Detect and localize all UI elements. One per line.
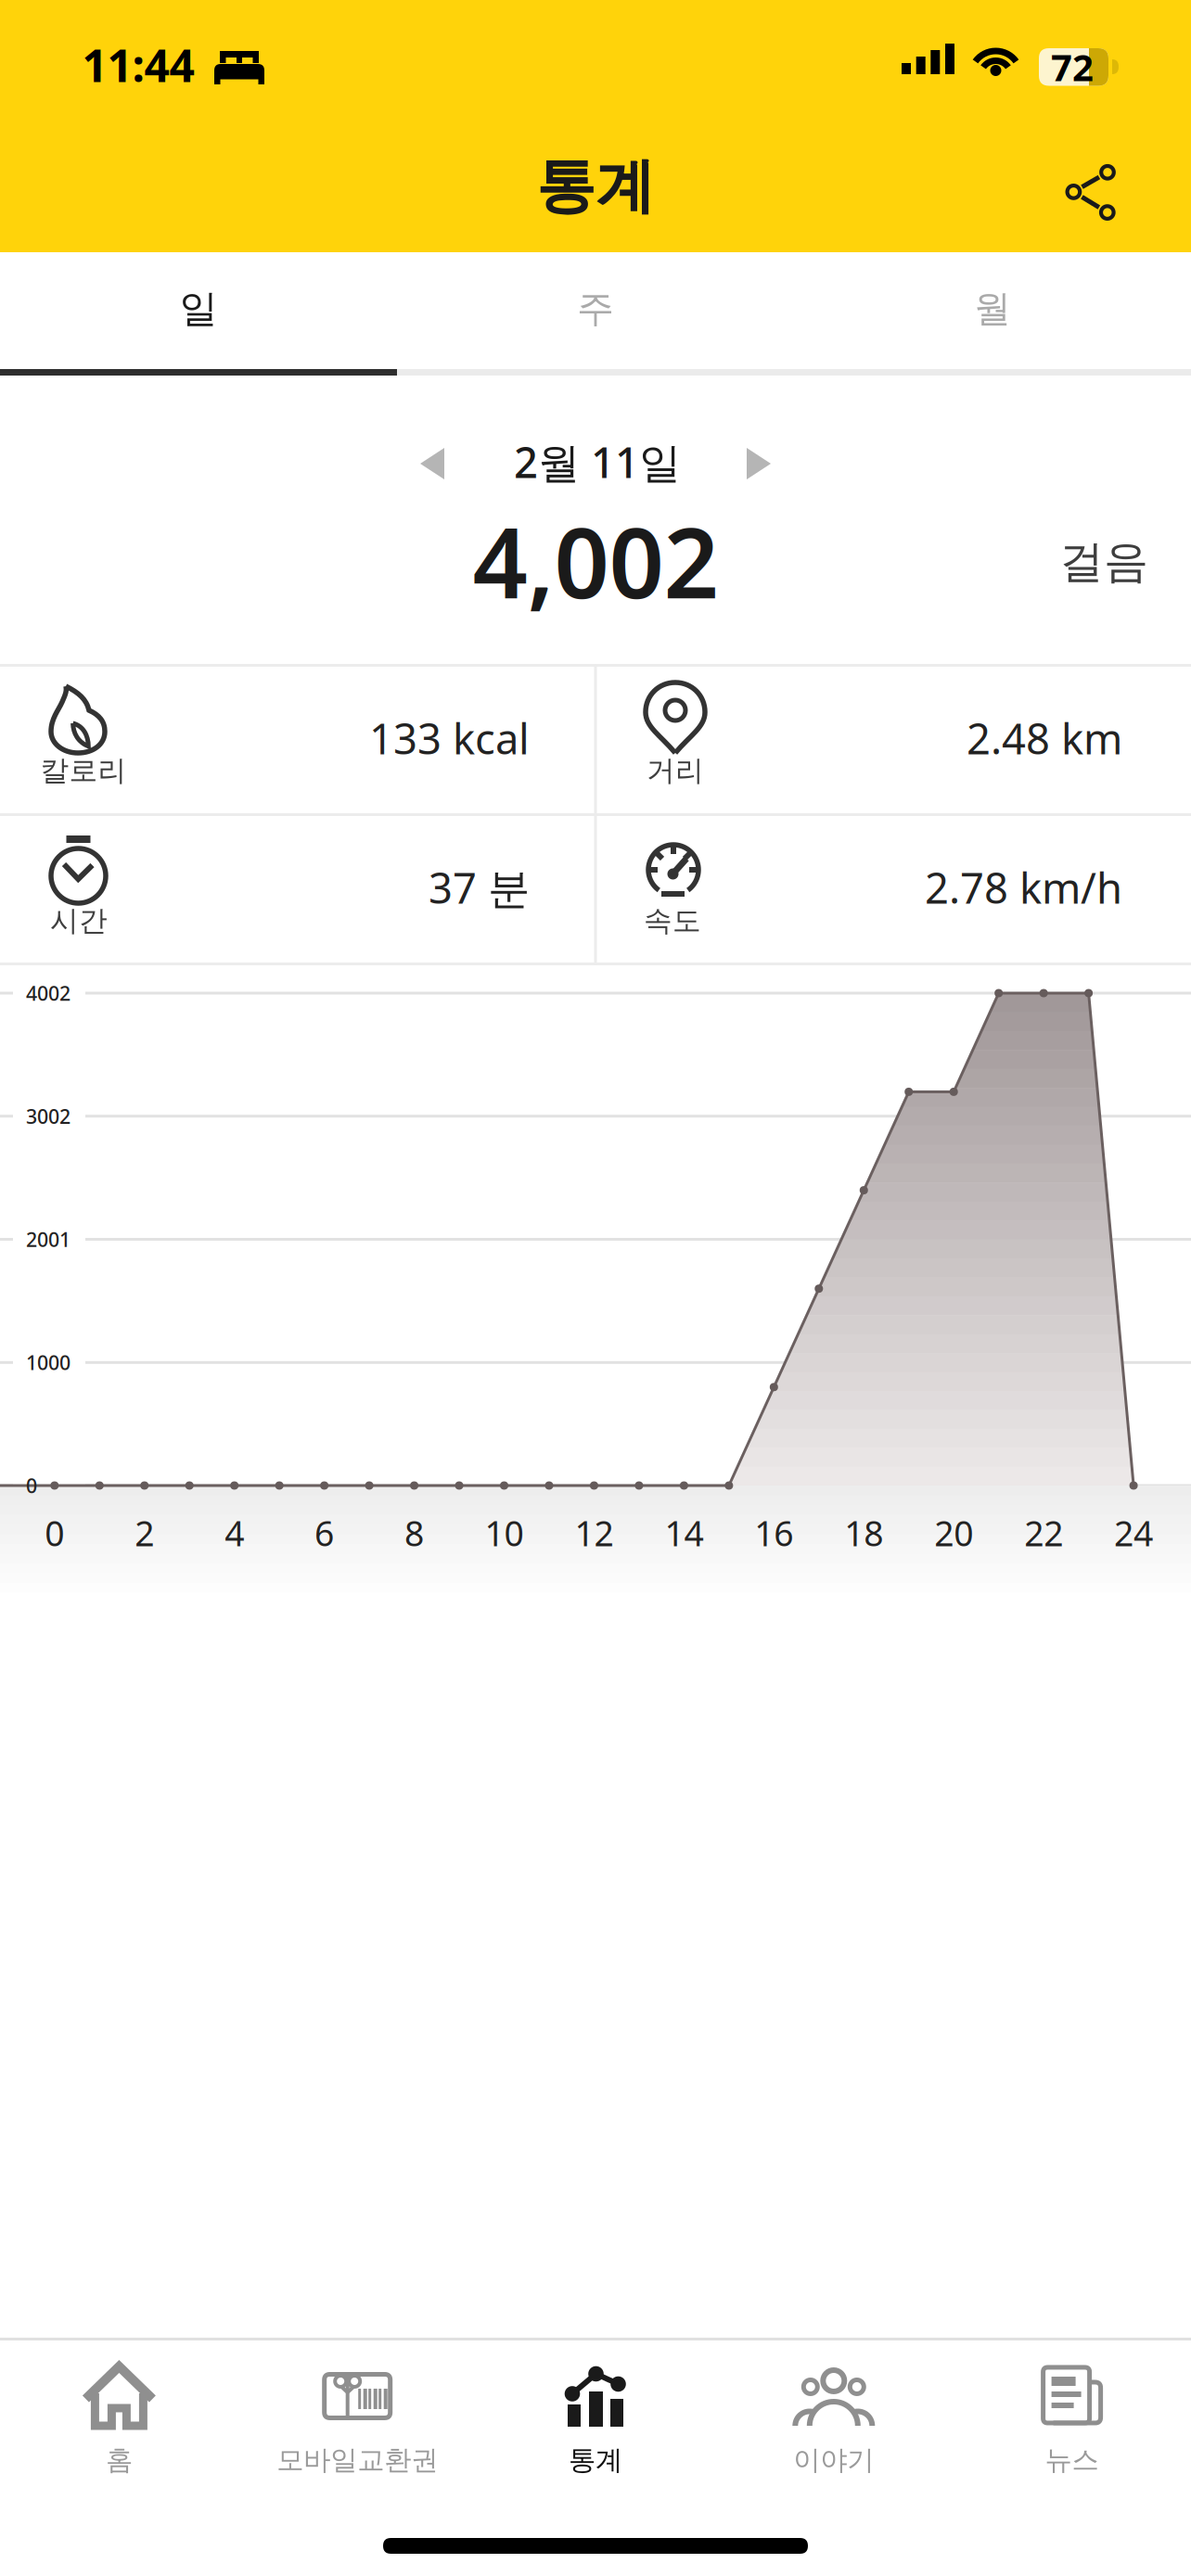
button[interactable]: Share [1049,141,1151,243]
button[interactable]: 모바일교환권 [238,2340,476,2497]
button[interactable]: 일 [0,250,397,367]
staticText: 통계 [569,2443,622,2477]
staticText: 20 [934,1510,973,1556]
staticText: 모바일교환권 [277,2443,438,2477]
button[interactable]: 이야기 [715,2340,953,2497]
staticText: 뉴스 [1045,2443,1099,2477]
staticText: 12 [575,1510,613,1556]
staticText: 2.48 km [967,710,1122,766]
staticText: 거리 [647,753,704,788]
staticText: 일 [179,285,218,332]
staticText: 4 [225,1510,244,1556]
staticText: 2001 [26,1226,70,1252]
staticText: 4,002 [473,497,718,625]
staticText: 2월 11일 [514,434,681,490]
staticText: 주 [577,286,614,332]
staticText: 6 [315,1510,334,1556]
button[interactable]: 통계 [476,2340,715,2497]
staticText: 14 [665,1510,703,1556]
staticText: 홈 [106,2443,133,2477]
staticText: 칼로리 [40,753,127,788]
staticText: 11:44 [82,35,194,94]
staticText: 속도 [644,903,701,938]
staticText: 18 [844,1510,883,1556]
button[interactable]: 뉴스 [953,2340,1191,2497]
staticText: 통계 [536,150,655,223]
staticText: 1000 [26,1349,70,1376]
staticText: 2.78 km/h [925,860,1122,915]
staticText: 0 [45,1510,64,1556]
button[interactable]: Next day [700,417,817,510]
staticText: 37 분 [429,860,530,915]
staticText: 16 [754,1510,793,1556]
staticText: 4002 [26,980,70,1006]
staticText: 이야기 [793,2443,874,2477]
staticText: 22 [1024,1510,1063,1556]
staticText: 2 [135,1510,154,1556]
staticText: 24 [1114,1510,1153,1556]
staticText: 3002 [26,1103,70,1129]
button[interactable]: 홈 [0,2340,238,2497]
button[interactable]: Previous day [374,417,491,510]
staticText: 10 [485,1510,524,1556]
staticText: 133 kcal [369,710,530,766]
button[interactable]: 월 [794,250,1191,367]
staticText: 시간 [50,903,108,938]
staticText: 8 [405,1510,424,1556]
staticText: 걸음 [1059,535,1148,589]
staticText: 0 [26,1472,37,1499]
staticText: 72 [1051,42,1094,91]
staticText: 월 [974,286,1011,332]
button[interactable]: 주 [397,250,794,367]
